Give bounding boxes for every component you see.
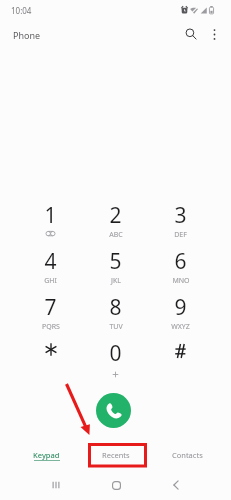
staticText: 5 (109, 247, 122, 276)
staticText: Contacts (172, 450, 203, 460)
staticText: WXYZ (171, 322, 190, 332)
button[interactable]: 7 (18, 282, 83, 328)
staticText: 8 (109, 293, 122, 322)
staticText: GHI (44, 276, 57, 286)
staticText: Phone (13, 29, 41, 41)
button[interactable]: 2 (83, 190, 148, 236)
staticText: ABC (109, 230, 123, 240)
staticText: 4 (44, 247, 57, 276)
staticText: 0 (109, 339, 122, 368)
button[interactable]: 5 (83, 236, 148, 282)
button[interactable]: Search (178, 21, 204, 47)
button[interactable]: 4 (18, 236, 83, 282)
staticText: Keypad (33, 450, 60, 460)
staticText: 1 (44, 201, 57, 230)
button[interactable]: 8 (83, 282, 148, 328)
staticText: 10:04 (11, 5, 32, 16)
button[interactable]: 1 (18, 190, 83, 236)
staticText: TUV (109, 322, 123, 332)
staticText: DEF (174, 230, 187, 240)
staticText: JKL (111, 276, 121, 286)
button[interactable]: 6 (148, 236, 213, 282)
button[interactable]: Recents (87, 442, 145, 468)
staticText: 3 (174, 201, 187, 230)
button[interactable]: 3 (148, 190, 213, 236)
button[interactable]: 9 (148, 282, 213, 328)
button[interactable]: Keypad (17, 442, 75, 468)
staticText: Recents (102, 450, 130, 460)
button[interactable]: Back (158, 470, 194, 500)
button[interactable]: Contacts (158, 442, 216, 468)
staticText: PQRS (42, 322, 60, 332)
button[interactable] (148, 328, 213, 374)
staticText: 6 (174, 247, 187, 276)
staticText: 7 (44, 293, 57, 322)
staticText: MNO (172, 276, 190, 286)
button[interactable]: More options (201, 21, 227, 47)
button[interactable]: Home (98, 470, 134, 500)
staticText: 9 (174, 293, 187, 322)
button[interactable]: Recent apps (38, 470, 74, 500)
staticText: 2 (109, 201, 122, 230)
button[interactable]: 0 (83, 328, 148, 374)
button[interactable] (18, 328, 83, 374)
button[interactable]: Call (96, 393, 131, 428)
